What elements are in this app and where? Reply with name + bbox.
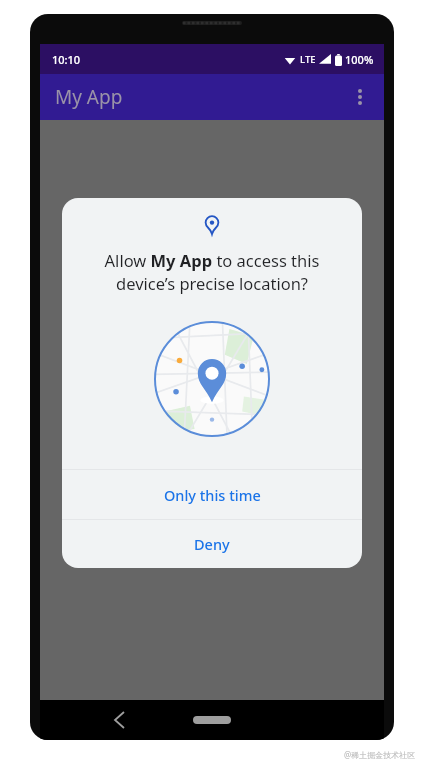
- button[interactable]: More options: [344, 81, 376, 113]
- button[interactable]: Deny: [62, 520, 362, 568]
- staticText: 10:10: [52, 52, 81, 67]
- staticText: Deny: [194, 534, 230, 554]
- staticText: Allow My App to access this device’s pre…: [84, 249, 340, 295]
- staticText: @稀土掘金技术社区: [344, 749, 416, 760]
- button[interactable]: Back: [102, 703, 136, 737]
- button[interactable]: Only this time: [62, 470, 362, 519]
- staticText: Only this time: [164, 485, 261, 505]
- staticText: LTE: [300, 53, 316, 66]
- staticText: 100%: [345, 52, 374, 67]
- button[interactable]: Home: [190, 710, 234, 730]
- staticText: My App: [55, 84, 123, 110]
